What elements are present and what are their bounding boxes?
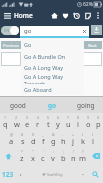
staticText: " (32, 149, 34, 154)
button[interactable]: Go (21, 38, 84, 50)
button[interactable]: Shift (0, 147, 16, 165)
button[interactable]: Search (88, 165, 103, 183)
button[interactable]: 1 (0, 113, 11, 130)
button[interactable]: 7 (63, 113, 73, 130)
button[interactable]: 4 (33, 113, 43, 130)
staticText: t (47, 119, 50, 129)
button[interactable]: Previous (1, 41, 21, 49)
button[interactable]: Backspace (88, 147, 103, 165)
button[interactable]: good (0, 97, 35, 113)
button[interactable]: - (58, 130, 68, 147)
staticText: m (79, 153, 87, 163)
staticText: * (21, 149, 23, 154)
button[interactable]: Download (91, 25, 102, 35)
button[interactable]: 0 (93, 113, 103, 130)
button[interactable]: go (35, 97, 69, 113)
button[interactable]: Home (49, 9, 60, 22)
staticText: ! (73, 149, 74, 154)
button[interactable]: : (48, 147, 58, 165)
staticText: SwiftKey (47, 172, 63, 177)
staticText: o (86, 119, 91, 129)
button[interactable]: Next (82, 41, 102, 49)
button[interactable]: 9 (83, 113, 93, 130)
staticText: Go Aboard (24, 86, 52, 93)
staticText: Go A Long Way (24, 64, 64, 71)
staticText: _ (42, 132, 44, 137)
button[interactable]: Menu (0, 9, 14, 22)
staticText: y (56, 119, 60, 129)
staticText: 8 (77, 115, 80, 120)
button[interactable]: Go A Long Way Towards (21, 73, 84, 84)
button[interactable]: go (20, 26, 89, 36)
staticText: 1 (4, 115, 7, 120)
button[interactable]: Language toggle (1, 26, 19, 35)
button[interactable]: $ (28, 130, 38, 147)
button[interactable]: Home (14, 9, 33, 22)
staticText: 2 (15, 115, 18, 120)
staticText: s (21, 136, 25, 146)
button[interactable]: _ (38, 130, 48, 147)
staticText: 4 (37, 115, 40, 120)
staticText: 0 (97, 115, 100, 120)
staticText: j (72, 136, 74, 146)
button[interactable]: going (69, 97, 103, 113)
staticText: 6 (57, 115, 60, 120)
button[interactable]: " (27, 147, 38, 165)
staticText: e (25, 119, 30, 129)
button[interactable]: Go A Long Way (21, 62, 84, 73)
button[interactable]: 2 (11, 113, 22, 130)
staticText: w (14, 119, 20, 129)
staticText: l (92, 136, 94, 146)
button[interactable]: ? (78, 147, 88, 165)
button[interactable]: + (68, 130, 78, 147)
button[interactable]: 5 (43, 113, 53, 130)
staticText: . (82, 168, 84, 178)
button[interactable]: & (48, 130, 58, 147)
button[interactable]: 3 (22, 113, 33, 130)
staticText: go (24, 27, 32, 35)
button[interactable]: ' (38, 147, 48, 165)
button[interactable]: Notes (82, 9, 93, 22)
staticText: g (51, 136, 56, 146)
button[interactable]: Space (26, 165, 78, 183)
staticText: $ (32, 132, 35, 137)
staticText: Go A Long Way Towards (24, 73, 84, 84)
button[interactable]: More options (93, 9, 103, 22)
staticText: p (96, 119, 101, 129)
button[interactable]: . (78, 165, 88, 183)
button[interactable]: Favorites (60, 9, 71, 22)
button[interactable]: # (17, 130, 28, 147)
staticText: c (41, 153, 45, 163)
staticText: i (77, 119, 79, 129)
staticText: EN (4, 28, 10, 33)
staticText: Home (14, 11, 33, 20)
staticText: u (66, 119, 71, 129)
button[interactable]: Clear (82, 29, 87, 34)
button[interactable]: 123 (0, 165, 16, 183)
button[interactable]: Go Aboard (21, 84, 84, 95)
button[interactable]: ( (78, 130, 88, 147)
staticText: b (61, 153, 66, 163)
staticText: + (72, 132, 75, 137)
staticText: h (61, 136, 66, 146)
button[interactable]: Go A Bundle On (21, 50, 84, 62)
staticText: z (20, 153, 24, 163)
button[interactable]: ; (58, 147, 68, 165)
staticText: & (52, 132, 55, 137)
staticText: - (62, 132, 64, 137)
button[interactable]: History (71, 9, 82, 22)
staticText: 62% (83, 1, 93, 8)
staticText: ? (82, 149, 84, 154)
staticText: good (10, 101, 26, 110)
button[interactable]: @ (6, 130, 17, 147)
button[interactable]: * (16, 147, 27, 165)
button[interactable]: ) (88, 130, 98, 147)
staticText: ' (43, 149, 44, 154)
button[interactable]: 6 (53, 113, 63, 130)
button[interactable]: 8 (73, 113, 83, 130)
button[interactable]: , (16, 165, 26, 183)
button[interactable]: ! (68, 147, 78, 165)
staticText: 123 (2, 170, 14, 179)
staticText: q (3, 119, 8, 129)
staticText: 5 (47, 115, 50, 120)
